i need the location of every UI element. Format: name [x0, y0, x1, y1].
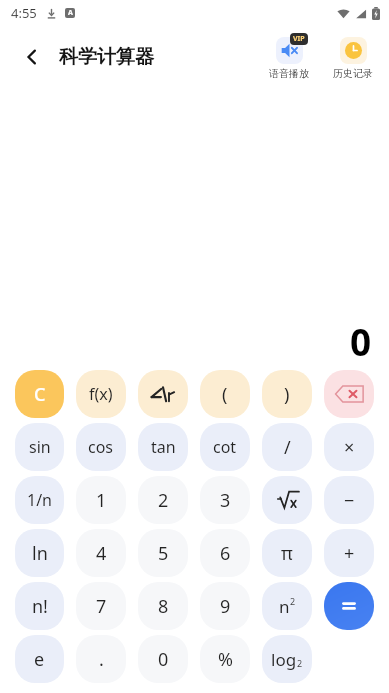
button[interactable]: cot [200, 423, 250, 471]
staticText: 4 [96, 541, 107, 566]
button[interactable]: 1 [76, 476, 126, 524]
staticText: VIP [293, 34, 305, 44]
staticText: π [281, 541, 293, 566]
button[interactable]: 8 [138, 582, 188, 630]
staticText: cos [88, 436, 114, 458]
button[interactable]: ln [15, 529, 64, 577]
staticText: / [284, 435, 291, 460]
button[interactable]: n! [15, 582, 64, 630]
staticText: log [271, 648, 297, 671]
button[interactable]: 7 [76, 582, 126, 630]
staticText: − [344, 488, 355, 513]
staticText: 8 [158, 594, 169, 619]
staticText: n [279, 595, 290, 618]
button[interactable]: 历史记录 [325, 35, 381, 80]
button[interactable]: 6 [200, 529, 250, 577]
staticText: . [99, 647, 104, 672]
button[interactable]: 删除 [324, 370, 374, 418]
staticText: 3 [220, 488, 231, 513]
button[interactable]: 开方 [262, 476, 312, 524]
staticText: ) [284, 382, 290, 407]
staticText: 语音播放 [269, 67, 309, 80]
staticText: + [344, 541, 355, 566]
staticText: 0 [158, 647, 169, 672]
button[interactable]: n [262, 582, 312, 630]
staticText: C [34, 382, 46, 407]
staticText: 9 [220, 594, 231, 619]
staticText: 1/n [27, 489, 52, 511]
staticText: 5 [158, 541, 169, 566]
staticText: tan [151, 436, 176, 458]
staticText: ( [222, 382, 228, 407]
button[interactable]: 角度弧度切换 [138, 370, 188, 418]
button[interactable]: % [200, 635, 250, 683]
button[interactable]: C [15, 370, 64, 418]
staticText: % [218, 647, 233, 672]
button[interactable]: 2 [138, 476, 188, 524]
button[interactable]: 1/n [15, 476, 64, 524]
staticText: × [344, 435, 355, 460]
button[interactable]: / [262, 423, 312, 471]
button[interactable]: Back [15, 40, 49, 74]
staticText: 6 [220, 541, 231, 566]
button[interactable]: 3 [200, 476, 250, 524]
staticText: sin [29, 436, 51, 458]
button[interactable]: 4 [76, 529, 126, 577]
staticText: 历史记录 [333, 67, 373, 80]
button[interactable]: f(x) [76, 370, 126, 418]
button[interactable]: − [324, 476, 374, 524]
button[interactable]: log [262, 635, 312, 683]
staticText: 1 [96, 488, 107, 513]
staticText: 科学计算器 [59, 45, 154, 69]
button[interactable]: ( [200, 370, 250, 418]
button[interactable]: cos [76, 423, 126, 471]
button[interactable]: ) [262, 370, 312, 418]
button[interactable]: + [324, 529, 374, 577]
button[interactable]: tan [138, 423, 188, 471]
button[interactable]: 语音播放 [261, 35, 317, 80]
staticText: cot [213, 436, 237, 458]
button[interactable]: 等于 [324, 582, 374, 630]
staticText: e [34, 647, 45, 672]
staticText: 4:55 [11, 4, 37, 22]
staticText: 7 [96, 594, 107, 619]
staticText: 2 [158, 488, 169, 513]
button[interactable]: × [324, 423, 374, 471]
button[interactable]: π [262, 529, 312, 577]
staticText: 0 [350, 316, 372, 366]
button[interactable]: sin [15, 423, 64, 471]
staticText: f(x) [89, 383, 113, 405]
staticText: n! [32, 594, 48, 619]
button[interactable]: . [76, 635, 126, 683]
button[interactable]: 5 [138, 529, 188, 577]
staticText: ln [32, 541, 48, 566]
staticText: A [68, 8, 73, 18]
staticText: 2 [290, 595, 296, 607]
button[interactable]: e [15, 635, 64, 683]
staticText: 2 [297, 657, 303, 669]
button[interactable]: 0 [138, 635, 188, 683]
button[interactable]: 9 [200, 582, 250, 630]
